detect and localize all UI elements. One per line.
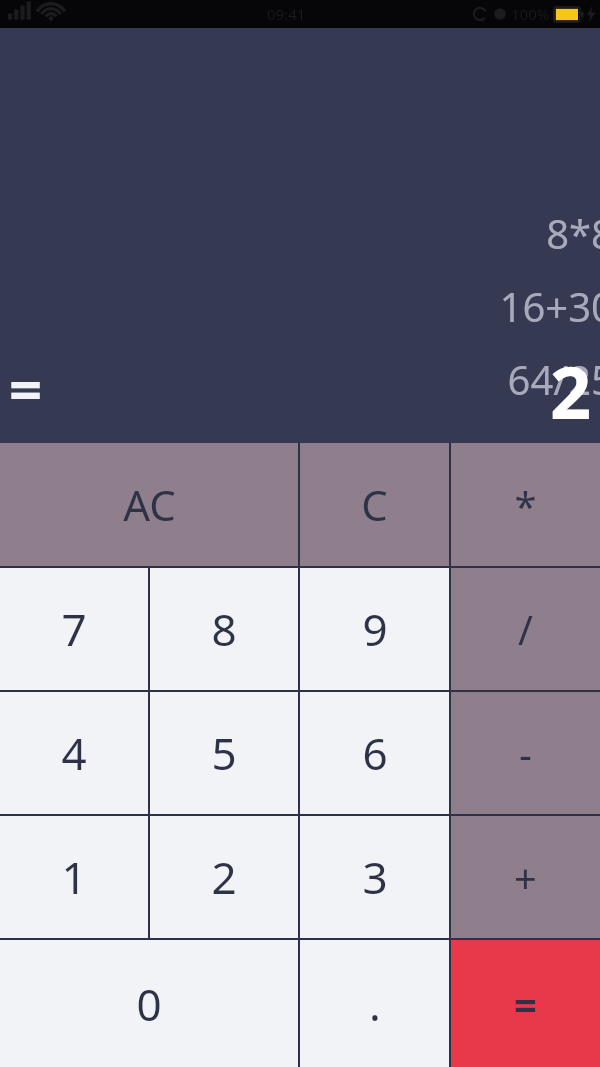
staticText: - — [519, 726, 532, 780]
button[interactable]: = — [451, 940, 600, 1067]
button[interactable]: 6 — [300, 692, 449, 814]
staticText: 100% — [511, 4, 550, 24]
staticText: 4 — [61, 723, 87, 783]
button[interactable]: - — [451, 692, 600, 814]
staticText: 8 — [211, 599, 237, 659]
staticText: 16+30 — [499, 279, 600, 333]
staticText: 2 — [550, 342, 592, 440]
button[interactable]: 4 — [0, 692, 148, 814]
staticText: 64/25 — [507, 352, 600, 406]
button[interactable]: AC — [0, 443, 298, 566]
button[interactable]: * — [451, 443, 600, 566]
staticText: 9 — [362, 599, 388, 659]
button[interactable]: 7 — [0, 568, 148, 690]
button[interactable]: C — [300, 443, 449, 566]
button[interactable]: . — [300, 940, 449, 1067]
button[interactable]: 0 — [0, 940, 298, 1067]
staticText: * — [514, 478, 537, 532]
button[interactable]: / — [451, 568, 600, 690]
staticText: 8*8 — [546, 206, 600, 260]
staticText: 6 — [362, 723, 388, 783]
staticText: = — [9, 349, 43, 428]
staticText: 5 — [211, 723, 237, 783]
button[interactable]: 8 — [150, 568, 298, 690]
button[interactable]: 9 — [300, 568, 449, 690]
staticText: AC — [123, 476, 176, 533]
staticText: 0 — [136, 974, 162, 1034]
staticText: 7 — [61, 599, 87, 659]
staticText: . — [369, 974, 381, 1034]
staticText: 09:41 — [267, 4, 306, 24]
button[interactable]: 5 — [150, 692, 298, 814]
staticText: / — [518, 602, 533, 656]
staticText: 3 — [362, 847, 388, 907]
button[interactable]: 1 — [0, 816, 148, 938]
staticText: + — [514, 850, 537, 904]
button[interactable]: + — [451, 816, 600, 938]
button[interactable]: 2 — [150, 816, 298, 938]
staticText: = — [514, 977, 537, 1031]
staticText: 2 — [211, 847, 237, 907]
staticText: 1 — [61, 847, 87, 907]
staticText: C — [361, 476, 388, 533]
button[interactable]: 3 — [300, 816, 449, 938]
